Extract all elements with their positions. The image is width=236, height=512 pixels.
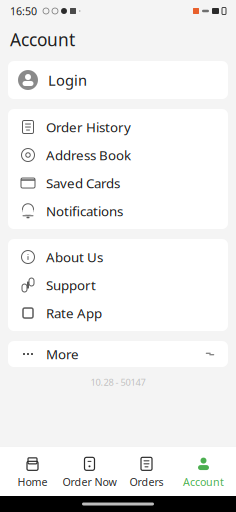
button[interactable]: Orders: [118, 451, 175, 494]
button[interactable]: Support: [8, 271, 228, 299]
button[interactable]: Home: [4, 451, 61, 494]
staticText: 16:50: [10, 4, 37, 18]
staticText: About Us: [46, 248, 103, 266]
staticText: Account: [10, 28, 75, 51]
staticText: Support: [46, 276, 96, 294]
staticText: Rate App: [46, 304, 102, 322]
button[interactable]: Address Book: [8, 141, 228, 169]
staticText: Order Now: [62, 475, 116, 489]
staticText: 10.28 - 50147: [90, 376, 145, 388]
button[interactable]: More: [0, 341, 236, 367]
button[interactable]: Order Now: [61, 451, 118, 494]
button[interactable]: About Us: [8, 243, 228, 271]
staticText: Login: [48, 70, 87, 90]
button[interactable]: Order History: [8, 113, 228, 141]
staticText: Home: [17, 475, 47, 489]
staticText: Orders: [129, 475, 163, 489]
staticText: More: [46, 345, 79, 363]
staticText: Address Book: [46, 146, 131, 164]
staticText: Saved Cards: [46, 174, 120, 192]
button[interactable]: Login: [0, 61, 236, 99]
staticText: Order History: [46, 118, 131, 136]
button[interactable]: Saved Cards: [8, 169, 228, 197]
staticText: Account: [183, 475, 224, 489]
button[interactable]: Account: [175, 451, 232, 494]
staticText: Notifications: [46, 202, 123, 220]
button[interactable]: Rate App: [8, 299, 228, 327]
button[interactable]: Notifications: [8, 197, 228, 225]
